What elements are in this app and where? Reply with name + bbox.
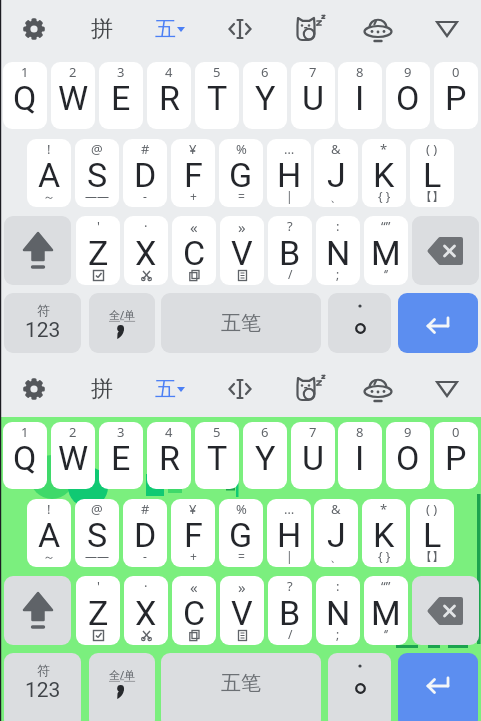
staticText: =: [238, 188, 245, 204]
button[interactable]: 符: [4, 293, 81, 353]
button[interactable]: 拼: [68, 0, 136, 57]
button[interactable]: ·: [124, 576, 168, 645]
button[interactable]: 5: [195, 62, 239, 129]
button[interactable]: [412, 360, 481, 417]
button[interactable]: 符: [4, 653, 81, 721]
button[interactable]: 全/单: [89, 293, 155, 353]
button[interactable]: *: [362, 499, 406, 567]
button[interactable]: 4: [147, 62, 191, 129]
button[interactable]: …: [267, 139, 311, 207]
button[interactable]: &: [314, 139, 358, 207]
button[interactable]: [328, 293, 391, 353]
button[interactable]: [343, 0, 412, 57]
button[interactable]: 3: [99, 422, 143, 489]
button[interactable]: %: [219, 139, 263, 207]
staticText: P: [445, 78, 467, 118]
button[interactable]: @: [75, 499, 119, 567]
button[interactable]: [205, 0, 274, 57]
button[interactable]: “”: [364, 216, 408, 285]
button[interactable]: »: [220, 216, 264, 285]
staticText: …: [284, 140, 295, 158]
staticText: L: [423, 155, 442, 195]
button[interactable]: 2: [51, 62, 95, 129]
staticText: %: [236, 140, 247, 158]
staticText: ——: [85, 188, 110, 204]
button[interactable]: 8: [338, 422, 382, 489]
button[interactable]: 8: [338, 62, 382, 129]
button[interactable]: [274, 0, 343, 57]
staticText: M: [371, 593, 401, 633]
staticText: R: [159, 438, 180, 478]
staticText: /: [288, 626, 293, 642]
button[interactable]: «: [172, 576, 216, 645]
staticText: J: [327, 155, 346, 195]
button[interactable]: 5: [195, 422, 239, 489]
button[interactable]: [412, 0, 481, 57]
button[interactable]: [0, 360, 68, 417]
button[interactable]: :: [316, 216, 360, 285]
staticText: 3: [117, 63, 125, 81]
button[interactable]: ·: [124, 216, 168, 285]
button[interactable]: ': [76, 216, 120, 285]
button[interactable]: %: [219, 499, 263, 567]
button[interactable]: [398, 293, 478, 353]
button[interactable]: ( ): [410, 139, 454, 207]
button[interactable]: 7: [291, 422, 335, 489]
button[interactable]: &: [314, 499, 358, 567]
staticText: U: [302, 438, 325, 478]
button[interactable]: ( ): [410, 499, 454, 567]
button[interactable]: 7: [291, 62, 335, 129]
button[interactable]: 4: [147, 422, 191, 489]
staticText: /: [288, 266, 293, 282]
button[interactable]: 9: [386, 422, 430, 489]
button[interactable]: 拼: [68, 360, 136, 417]
button[interactable]: [4, 216, 71, 285]
button[interactable]: ?: [268, 576, 312, 645]
button[interactable]: 2: [51, 422, 95, 489]
button[interactable]: [4, 576, 71, 645]
button[interactable]: 五笔: [161, 653, 321, 721]
button[interactable]: ': [76, 576, 120, 645]
button[interactable]: 0: [434, 62, 478, 129]
staticText: 拼: [91, 15, 113, 43]
button[interactable]: [343, 360, 412, 417]
button[interactable]: 3: [99, 62, 143, 129]
staticText: I: [355, 438, 365, 478]
button[interactable]: ?: [268, 216, 312, 285]
button[interactable]: #: [123, 499, 167, 567]
button[interactable]: [328, 653, 391, 721]
button[interactable]: 9: [386, 62, 430, 129]
button[interactable]: [412, 216, 479, 285]
button[interactable]: “”: [364, 576, 408, 645]
staticText: ( ): [426, 140, 438, 158]
button[interactable]: #: [123, 139, 167, 207]
button[interactable]: 0: [434, 422, 478, 489]
button[interactable]: ¥: [171, 139, 215, 207]
button[interactable]: [0, 0, 68, 57]
button[interactable]: 1: [3, 422, 47, 489]
button[interactable]: !: [27, 139, 71, 207]
button[interactable]: !: [27, 499, 71, 567]
button[interactable]: 全/单: [89, 653, 155, 721]
button[interactable]: ¥: [171, 499, 215, 567]
button[interactable]: …: [267, 499, 311, 567]
button[interactable]: [398, 653, 478, 721]
staticText: ?: [287, 217, 293, 235]
button[interactable]: 6: [243, 62, 287, 129]
staticText: 1: [21, 423, 29, 441]
button[interactable]: @: [75, 139, 119, 207]
button[interactable]: 五笔: [161, 293, 321, 353]
button[interactable]: 五: [136, 360, 205, 417]
button[interactable]: «: [172, 216, 216, 285]
button[interactable]: »: [220, 576, 264, 645]
button[interactable]: 1: [3, 62, 47, 129]
button[interactable]: [412, 576, 479, 645]
button[interactable]: [274, 360, 343, 417]
button[interactable]: [205, 360, 274, 417]
staticText: 五: [155, 376, 176, 402]
button[interactable]: 6: [243, 422, 287, 489]
button[interactable]: :: [316, 576, 360, 645]
button[interactable]: *: [362, 139, 406, 207]
button[interactable]: 五: [136, 0, 205, 57]
staticText: 123: [25, 678, 61, 703]
